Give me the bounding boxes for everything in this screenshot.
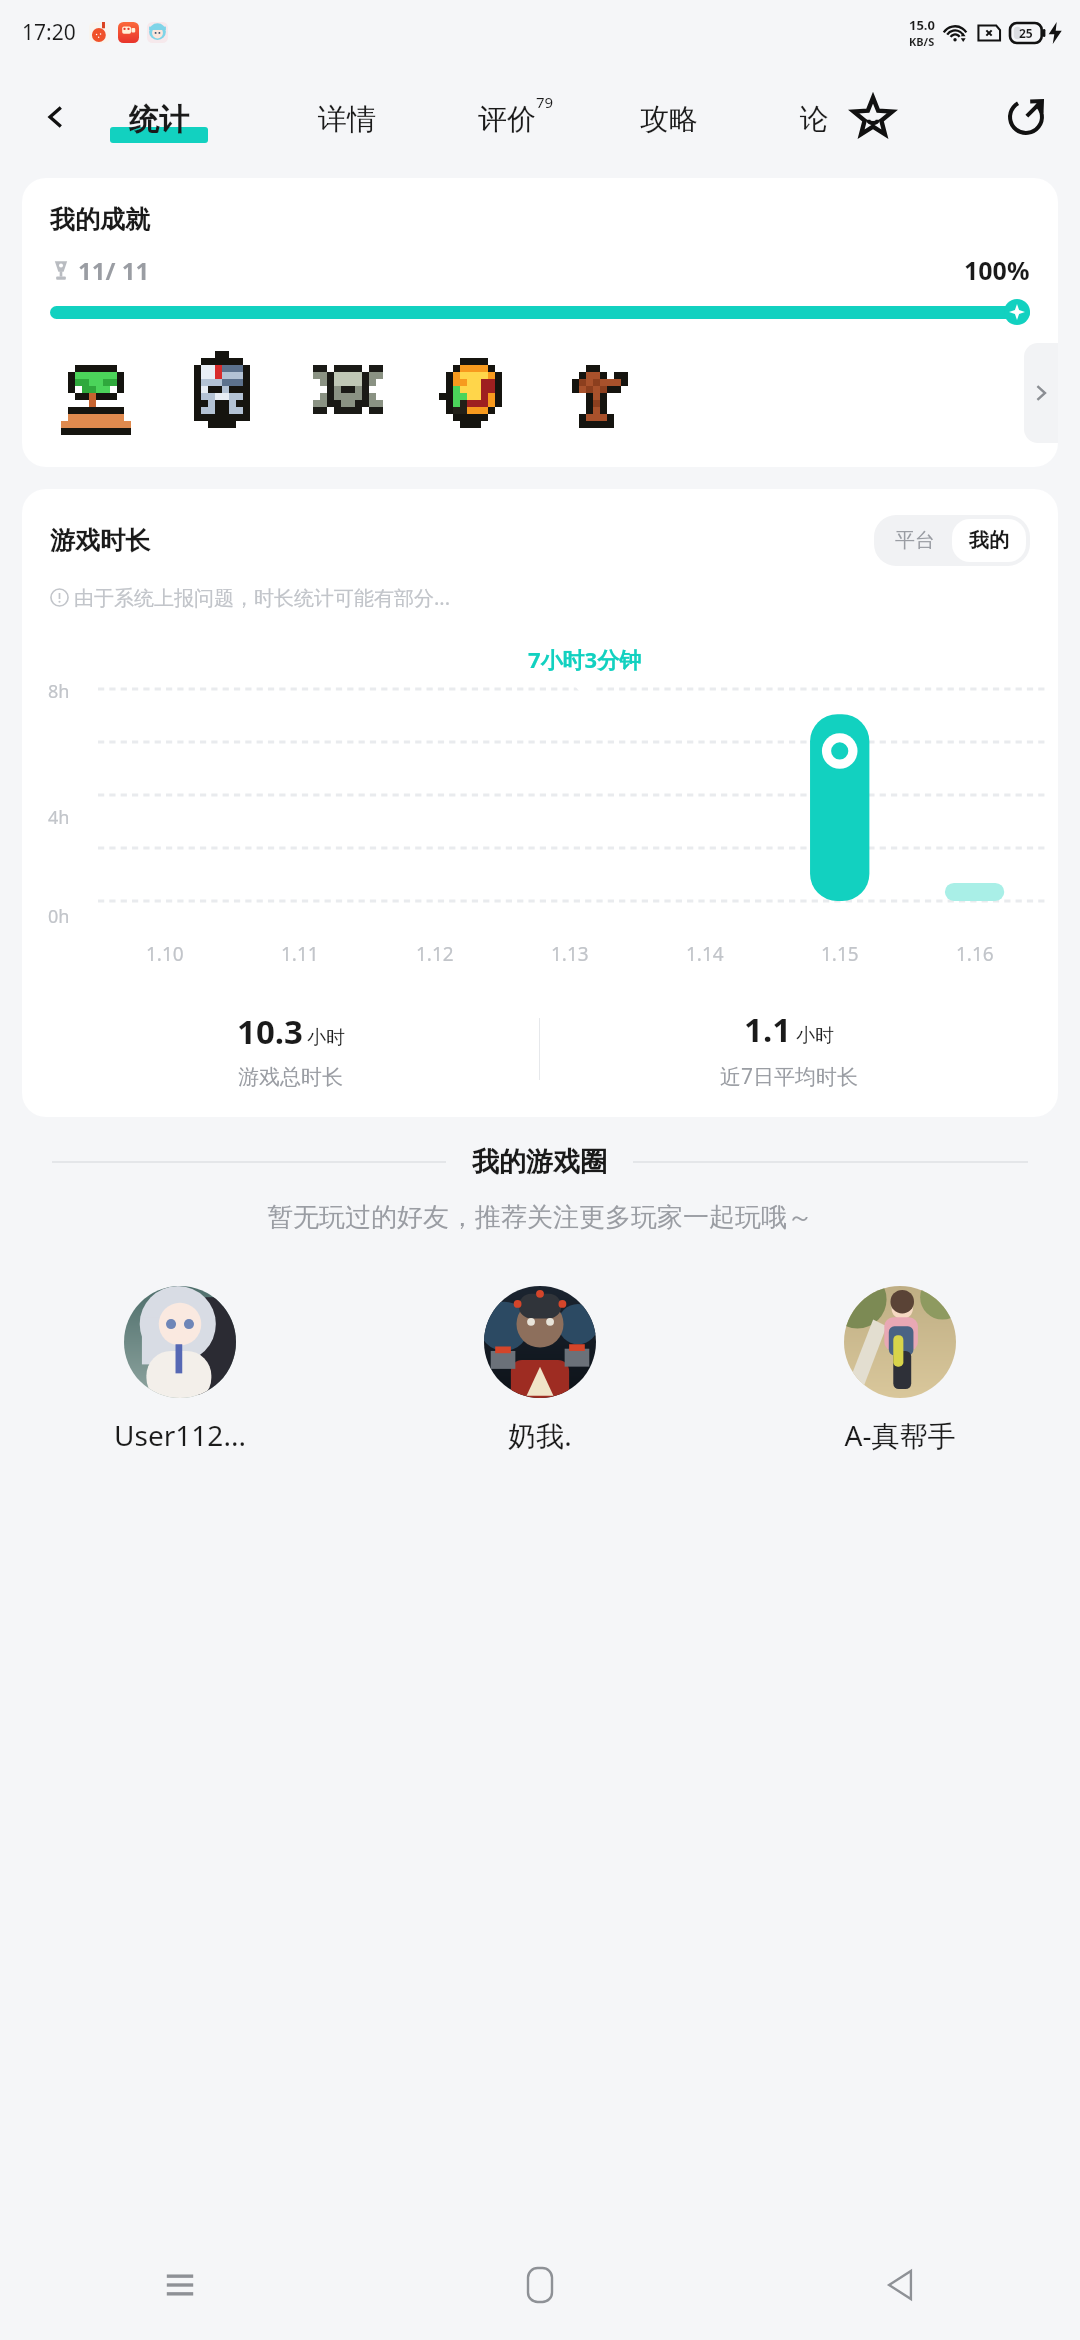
staticText: 由于系统上报问题，时长统计可能有部分... (74, 584, 451, 611)
button[interactable]: Favorite (845, 89, 901, 145)
staticText: 1.1 (744, 1007, 792, 1052)
staticText: 10.3 (237, 1009, 303, 1054)
button[interactable]: 我的 (969, 528, 1009, 553)
staticText: 1.13 (551, 941, 589, 967)
button[interactable]: Back (34, 95, 78, 139)
button[interactable]: User112... (0, 1286, 360, 1454)
staticText: 暂无玩过的好友，推荐关注更多玩家一起玩哦～ (0, 1201, 1080, 1234)
button[interactable]: 我的成就 (22, 178, 1058, 467)
staticText: A-真帮手 (720, 1416, 1080, 1454)
button[interactable]: 平台 (895, 528, 935, 553)
button[interactable]: Share (998, 89, 1054, 145)
button[interactable]: A-真帮手 (720, 1286, 1080, 1454)
staticText: 17:20 (22, 18, 76, 47)
button[interactable]: 奶我. (360, 1286, 720, 1454)
staticText: 我的游戏圈 (472, 1145, 607, 1179)
button[interactable]: Back (720, 2230, 1080, 2340)
staticText: 统计 (129, 101, 189, 139)
staticText: 1.12 (416, 941, 454, 967)
staticText: 近7日平均时长 (720, 1062, 859, 1091)
staticText: 0h (48, 904, 70, 929)
button[interactable]: More achievements (1024, 343, 1058, 443)
staticText: 1.15 (821, 941, 859, 967)
staticText: 1.14 (686, 941, 724, 967)
staticText: 11/ 11 (78, 254, 150, 287)
staticText: 79 (536, 92, 554, 112)
staticText: 论 (800, 101, 829, 138)
staticText: 8h (48, 679, 70, 704)
staticText: 我的 (969, 528, 1009, 553)
staticText: 100% (964, 253, 1030, 287)
staticText: 15.0 (909, 16, 935, 34)
staticText: 1.16 (956, 941, 994, 967)
button[interactable]: 论 (800, 101, 829, 138)
button[interactable]: 评价 (478, 101, 554, 138)
staticText: KB/S (909, 34, 935, 49)
staticText: 游戏时长 (50, 525, 150, 556)
staticText: 详情 (318, 101, 376, 138)
staticText: 1.11 (281, 941, 319, 967)
staticText: 游戏总时长 (238, 1064, 343, 1090)
staticText: 评价 (478, 101, 536, 138)
staticText: 小时 (796, 1024, 834, 1048)
staticText: 25 (1019, 25, 1033, 41)
staticText: 攻略 (640, 101, 698, 138)
button[interactable]: 攻略 (640, 101, 698, 138)
button[interactable]: Home (360, 2230, 720, 2340)
button[interactable]: Recent apps (0, 2230, 360, 2340)
button[interactable]: 统计 (110, 101, 208, 139)
staticText: 7小时3分钟 (528, 644, 642, 674)
staticText: 奶我. (360, 1416, 720, 1454)
staticText: 平台 (895, 528, 935, 553)
staticText: 我的成就 (50, 204, 150, 235)
button[interactable]: 详情 (318, 101, 376, 138)
staticText: 小时 (307, 1026, 345, 1050)
staticText: 4h (48, 805, 70, 830)
staticText: 1.10 (146, 941, 184, 967)
staticText: User112... (0, 1416, 360, 1454)
